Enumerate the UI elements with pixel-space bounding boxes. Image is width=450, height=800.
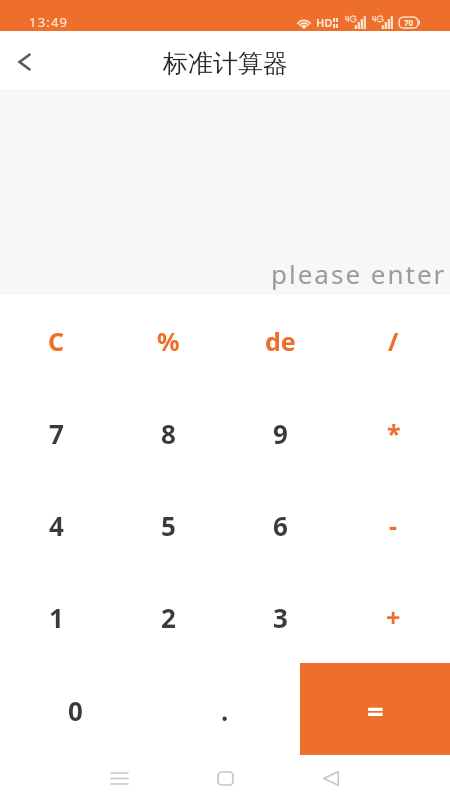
staticText: 3 — [273, 600, 288, 635]
staticText: 5 — [161, 508, 176, 543]
staticText: 13:49 — [29, 13, 69, 31]
staticText: 标准计算器 — [163, 48, 288, 79]
button[interactable]: de — [224, 295, 337, 387]
button[interactable]: 5 — [112, 479, 224, 571]
staticText: C — [48, 324, 65, 358]
staticText: % — [157, 324, 180, 358]
staticText: please enter — [271, 256, 447, 291]
staticText: - — [389, 508, 398, 542]
staticText: 70 — [404, 17, 414, 28]
staticText: 8 — [161, 416, 176, 451]
button[interactable]: 0 — [0, 663, 150, 757]
staticText: HD — [316, 15, 333, 30]
button[interactable]: Back — [0, 31, 50, 89]
staticText: / — [388, 324, 399, 358]
staticText: * — [387, 416, 401, 450]
button[interactable]: + — [337, 571, 450, 663]
button[interactable]: Recent apps — [96, 757, 142, 800]
staticText: 4 — [49, 508, 64, 543]
staticText: + — [386, 600, 401, 634]
button[interactable]: Home — [202, 757, 248, 800]
button[interactable]: 4 — [0, 479, 112, 571]
button[interactable]: 8 — [112, 387, 224, 479]
button[interactable]: . — [150, 663, 300, 757]
button[interactable]: * — [337, 387, 450, 479]
button[interactable]: = — [300, 663, 450, 755]
staticText: 7 — [49, 416, 64, 451]
staticText: de — [265, 324, 296, 358]
button[interactable]: % — [112, 295, 224, 387]
button[interactable]: 6 — [224, 479, 337, 571]
button[interactable]: 1 — [0, 571, 112, 663]
staticText: 6 — [273, 508, 288, 543]
button[interactable]: 9 — [224, 387, 337, 479]
staticText: 0 — [68, 693, 83, 728]
staticText: 2 — [161, 600, 176, 635]
button[interactable]: Back — [308, 757, 354, 800]
button[interactable]: 3 — [224, 571, 337, 663]
button[interactable]: 2 — [112, 571, 224, 663]
button[interactable]: / — [337, 295, 450, 387]
button[interactable]: 7 — [0, 387, 112, 479]
staticText: . — [221, 693, 229, 728]
button[interactable]: - — [337, 479, 450, 571]
button[interactable]: C — [0, 295, 112, 387]
staticText: 9 — [273, 416, 288, 451]
staticText: 1 — [49, 600, 64, 635]
staticText: = — [367, 691, 384, 730]
